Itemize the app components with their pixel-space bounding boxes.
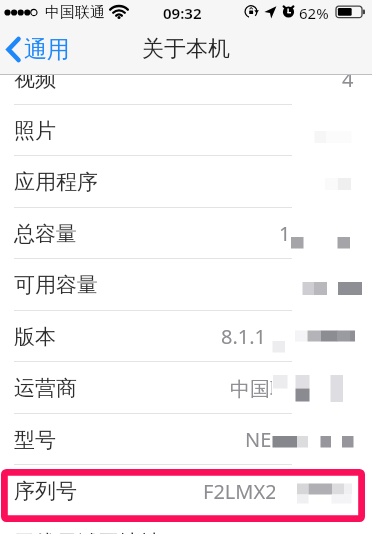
button[interactable]: 视频 [0, 53, 388, 105]
button[interactable]: 通用 [6, 27, 70, 71]
button[interactable]: 无线局域网地址 [0, 517, 388, 534]
staticText: 无线局域网地址 [14, 530, 161, 534]
staticText: 16.0 GB [279, 220, 352, 247]
button[interactable]: 照片 [0, 105, 388, 156]
staticText: NE771CH/A [245, 426, 354, 453]
button[interactable]: 序列号 [0, 465, 388, 517]
staticText: 版本 [14, 324, 56, 350]
button[interactable]: 总容量 [0, 208, 388, 259]
staticText: 视频 [14, 66, 56, 92]
staticText: 照片 [14, 118, 56, 144]
button[interactable]: Serial number highlighted [1, 469, 365, 522]
staticText: 关于本机 [142, 35, 230, 63]
staticText: F2LMX2ZWFRC5 [203, 478, 354, 505]
staticText: 中国联通 19.5 [230, 375, 355, 402]
staticText: 68 [324, 169, 347, 196]
staticText: 总容量 [14, 221, 77, 247]
staticText: 09:32 [163, 3, 202, 23]
staticText: 型号 [14, 427, 56, 453]
staticText: 可用容量 [14, 272, 98, 298]
button[interactable]: 可用容量 [0, 259, 388, 311]
staticText: 中国联通 [45, 3, 105, 22]
staticText: 5.22 GB [292, 272, 365, 299]
staticText: 62% [299, 3, 329, 23]
button[interactable]: 应用程序 [0, 156, 388, 208]
button[interactable]: 运营商 [0, 362, 388, 414]
staticText: 通用 [24, 35, 70, 64]
staticText: 4 [342, 66, 354, 93]
button[interactable]: 版本 [0, 311, 388, 362]
button[interactable]: 型号 [0, 414, 388, 465]
staticText: 序列号 [14, 478, 77, 504]
staticText: 8.1.1 (12B440) [221, 323, 354, 350]
staticText: 应用程序 [14, 169, 98, 195]
staticText: 运营商 [14, 375, 77, 401]
